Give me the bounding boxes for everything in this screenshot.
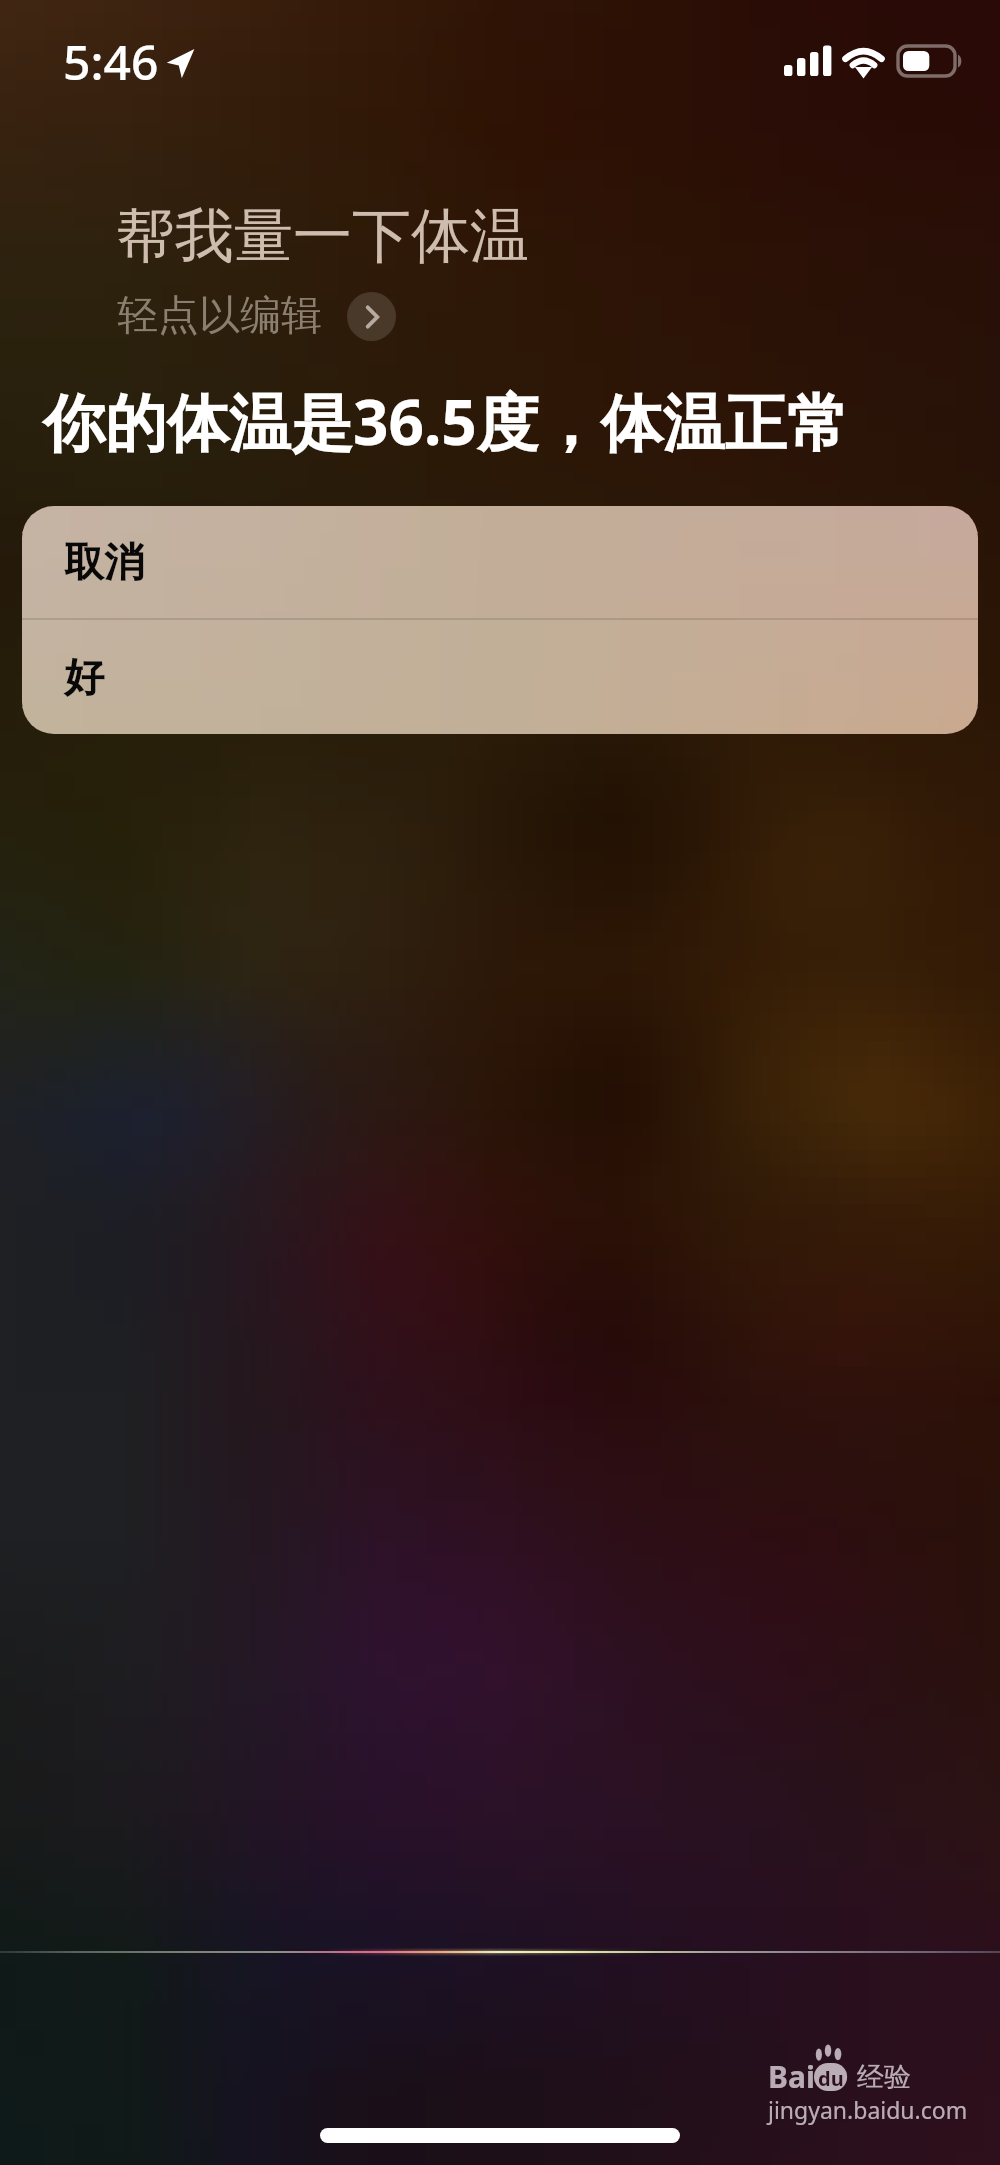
staticText: 轻点以编辑 <box>117 290 322 342</box>
staticText: 经验 <box>857 2060 911 2094</box>
staticText: jingyan.baidu.com <box>768 2094 968 2125</box>
other: Edit <box>347 292 396 341</box>
staticText: Bai <box>768 2056 815 2097</box>
staticText: 你的体温是36.5度，体温正常 <box>43 379 849 464</box>
button[interactable]: 轻点以编辑 <box>117 290 396 342</box>
button[interactable]: 取消 <box>22 506 978 618</box>
staticText: 5:46 <box>63 29 159 94</box>
staticText: 取消 <box>64 537 144 587</box>
button[interactable]: 好 <box>22 620 978 734</box>
staticText: 帮我量一下体温 <box>116 199 529 273</box>
staticText: du <box>818 2065 844 2092</box>
staticText: 好 <box>64 652 104 702</box>
